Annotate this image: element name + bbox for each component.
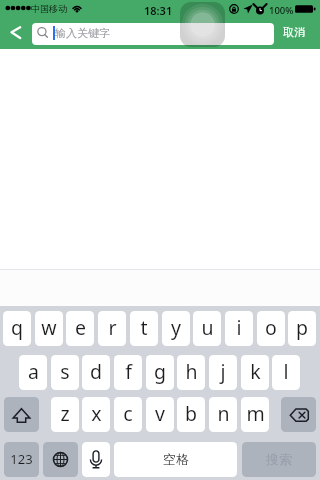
button[interactable]: w (35, 311, 63, 346)
button[interactable]: b (177, 397, 205, 432)
button[interactable]: Switch keyboard language (43, 442, 78, 477)
staticText: q (11, 314, 23, 341)
button[interactable]: t (130, 311, 158, 346)
staticText: n (217, 400, 230, 427)
staticText: z (60, 400, 70, 427)
staticText: 输入关键字 (55, 26, 110, 40)
button[interactable]: n (209, 397, 237, 432)
staticText: 空格 (163, 451, 189, 467)
button[interactable]: u (193, 311, 221, 346)
staticText: 取消 (283, 25, 305, 39)
button[interactable]: Back (0, 20, 31, 49)
button[interactable]: l (272, 355, 300, 390)
button[interactable]: Backspace (281, 397, 316, 432)
staticText: m (246, 400, 265, 427)
button[interactable]: o (257, 311, 285, 346)
button[interactable]: m (241, 397, 269, 432)
button[interactable]: j (209, 355, 237, 390)
staticText: 100% (269, 4, 294, 17)
staticText: l (283, 358, 289, 385)
button[interactable]: 空格 (114, 442, 237, 477)
button[interactable]: 123 (4, 442, 39, 477)
button[interactable]: f (114, 355, 142, 390)
button[interactable]: i (225, 311, 253, 346)
staticText: k (250, 358, 261, 385)
button[interactable]: c (114, 397, 142, 432)
button[interactable]: Voice input (82, 442, 110, 477)
staticText: g (154, 358, 166, 385)
staticText: v (155, 400, 165, 427)
button[interactable]: k (241, 355, 269, 390)
staticText: x (91, 400, 102, 427)
staticText: d (90, 358, 102, 385)
staticText: s (60, 358, 70, 385)
staticText: i (236, 314, 242, 341)
button[interactable]: y (162, 311, 190, 346)
button[interactable]: Shift (4, 397, 39, 432)
staticText: y (171, 314, 181, 341)
button[interactable]: v (146, 397, 174, 432)
staticText: 123 (10, 450, 33, 468)
button[interactable]: p (288, 311, 316, 346)
staticText: 18:31 (144, 3, 173, 18)
staticText: j (220, 358, 226, 385)
staticText: a (28, 358, 39, 385)
staticText: p (296, 314, 308, 341)
button[interactable]: 取消 (276, 20, 320, 49)
staticText: b (185, 400, 197, 427)
button[interactable]: x (82, 397, 110, 432)
button[interactable]: a (19, 355, 47, 390)
button[interactable]: q (3, 311, 31, 346)
staticText: r (108, 314, 117, 341)
button[interactable]: r (98, 311, 126, 346)
staticText: u (201, 314, 214, 341)
button[interactable]: d (82, 355, 110, 390)
button[interactable]: g (146, 355, 174, 390)
staticText: c (123, 400, 133, 427)
staticText: f (125, 358, 132, 385)
button[interactable]: z (51, 397, 79, 432)
button[interactable]: 搜索 (242, 442, 316, 477)
button[interactable]: 输入关键字 (32, 23, 274, 45)
button[interactable]: h (177, 355, 205, 390)
button[interactable]: e (66, 311, 94, 346)
button[interactable]: s (51, 355, 79, 390)
staticText: w (41, 314, 57, 341)
staticText: t (140, 314, 148, 341)
staticText: 中国移动 (31, 3, 67, 14)
staticText: 搜索 (266, 451, 292, 467)
staticText: o (265, 314, 277, 341)
staticText: h (185, 358, 198, 385)
staticText: e (75, 314, 86, 341)
